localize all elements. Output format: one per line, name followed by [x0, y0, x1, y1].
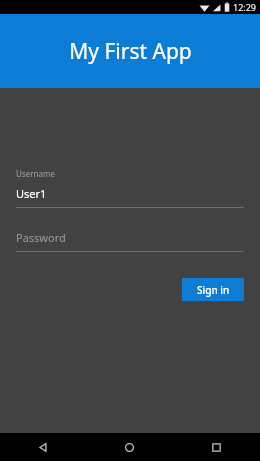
button[interactable]: Password: [0, 230, 260, 252]
staticText: Sign in: [197, 283, 230, 297]
button[interactable]: Home: [86, 433, 173, 461]
staticText: 12:29: [233, 1, 257, 13]
staticText: Password: [16, 230, 66, 245]
staticText: My First App: [69, 37, 192, 66]
button[interactable]: Recent apps: [173, 433, 260, 461]
button[interactable]: Username: [0, 168, 260, 208]
staticText: Username: [16, 168, 55, 179]
button[interactable]: Back: [0, 433, 86, 461]
button[interactable]: Sign in: [182, 278, 244, 301]
staticText: User1: [16, 186, 47, 201]
